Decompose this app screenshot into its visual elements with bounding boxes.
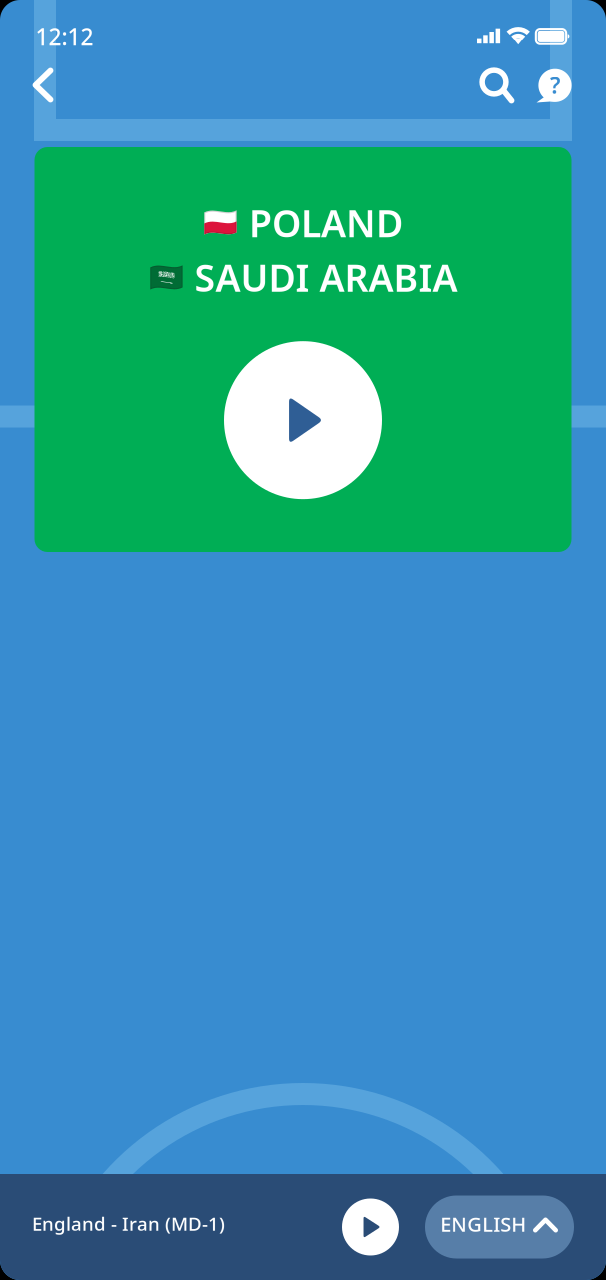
staticText: 🇸🇦 — [148, 261, 183, 293]
staticText: POLAND — [249, 198, 403, 248]
button[interactable]: Search — [0, 0, 606, 1280]
button[interactable]: Help — [0, 0, 606, 1280]
button[interactable]: ENGLISH — [425, 1195, 574, 1258]
staticText: England - Iran (MD-1) — [32, 1211, 225, 1236]
button[interactable]: 🇵🇱 — [34, 147, 571, 552]
button[interactable]: Back — [0, 0, 606, 1280]
staticText: 🇵🇱 — [203, 207, 238, 239]
staticText: ? — [550, 70, 560, 100]
button[interactable]: Play — [342, 1198, 399, 1255]
staticText: 12:12 — [35, 21, 93, 51]
staticText: SAUDI ARABIA — [194, 253, 457, 302]
staticText: ENGLISH — [440, 1211, 526, 1237]
